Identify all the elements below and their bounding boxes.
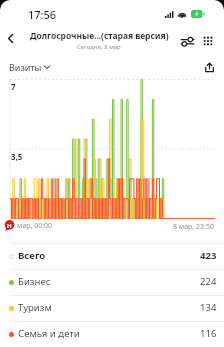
button[interactable]: Семья и дети: [0, 322, 224, 347]
button[interactable]: Back: [1, 29, 19, 47]
staticText: Долгосрочные...(старая версия): [30, 30, 169, 42]
button[interactable]: Всего: [0, 244, 224, 269]
staticText: Сегодня, 8 мар: [77, 43, 121, 51]
staticText: Всего: [18, 249, 46, 262]
staticText: Семья и дети: [18, 327, 80, 340]
staticText: Бизнес: [18, 275, 51, 288]
staticText: 7: [11, 81, 16, 92]
button[interactable]: Settings: [177, 31, 197, 51]
staticText: 8 мар, 23:50: [173, 222, 214, 232]
staticText: 224: [200, 275, 217, 288]
button[interactable]: Share: [200, 58, 218, 76]
staticText: 3,5: [11, 151, 23, 162]
staticText: Туризм: [18, 301, 52, 314]
button[interactable]: Визиты: [7, 59, 52, 75]
staticText: 423: [200, 249, 217, 262]
staticText: 116: [200, 327, 217, 340]
staticText: мар, 00:00: [17, 221, 53, 231]
button[interactable]: Бизнес: [0, 270, 224, 295]
button[interactable]: Apps: [198, 31, 218, 51]
staticText: 134: [200, 301, 217, 314]
staticText: Визиты: [9, 61, 42, 73]
staticText: Н: [7, 222, 12, 230]
button[interactable]: Туризм: [0, 296, 224, 321]
staticText: 17:56: [28, 7, 57, 22]
